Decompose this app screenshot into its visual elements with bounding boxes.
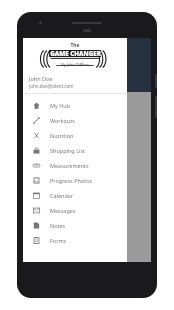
button[interactable]: Measurements	[23, 158, 127, 173]
button[interactable]: Nutrition	[23, 128, 127, 143]
button[interactable]: Shopping List	[23, 143, 127, 158]
staticText: Measurements	[50, 162, 89, 169]
button[interactable]: Forms	[23, 233, 127, 248]
staticText: NTS	[25, 178, 39, 188]
staticText: Progress Photos	[50, 177, 93, 184]
staticText: The	[70, 42, 80, 49]
button[interactable]: My Hub	[23, 98, 127, 113]
staticText: N	[29, 130, 35, 140]
staticText: Forms	[50, 237, 67, 244]
staticText: GAME CHANGER	[50, 49, 101, 57]
button[interactable]: Messages	[23, 203, 127, 218]
staticText: Calendar	[50, 192, 74, 199]
staticText: By John DiMino	[61, 62, 89, 67]
staticText: My Hub	[50, 102, 71, 109]
staticText: Notes	[50, 222, 66, 229]
button[interactable]: Calendar	[23, 188, 127, 203]
staticText: john.doe@client.com	[29, 83, 74, 89]
staticText: Nutrition	[50, 132, 74, 139]
staticText: John Doe	[29, 75, 53, 82]
button[interactable]: Workouts	[23, 113, 127, 128]
button[interactable]: Progress Photos	[23, 173, 127, 188]
staticText: Messages	[50, 207, 76, 214]
button[interactable]: Notes	[23, 218, 127, 233]
staticText: Shopping List	[50, 147, 86, 154]
staticText: Workouts	[50, 117, 75, 124]
